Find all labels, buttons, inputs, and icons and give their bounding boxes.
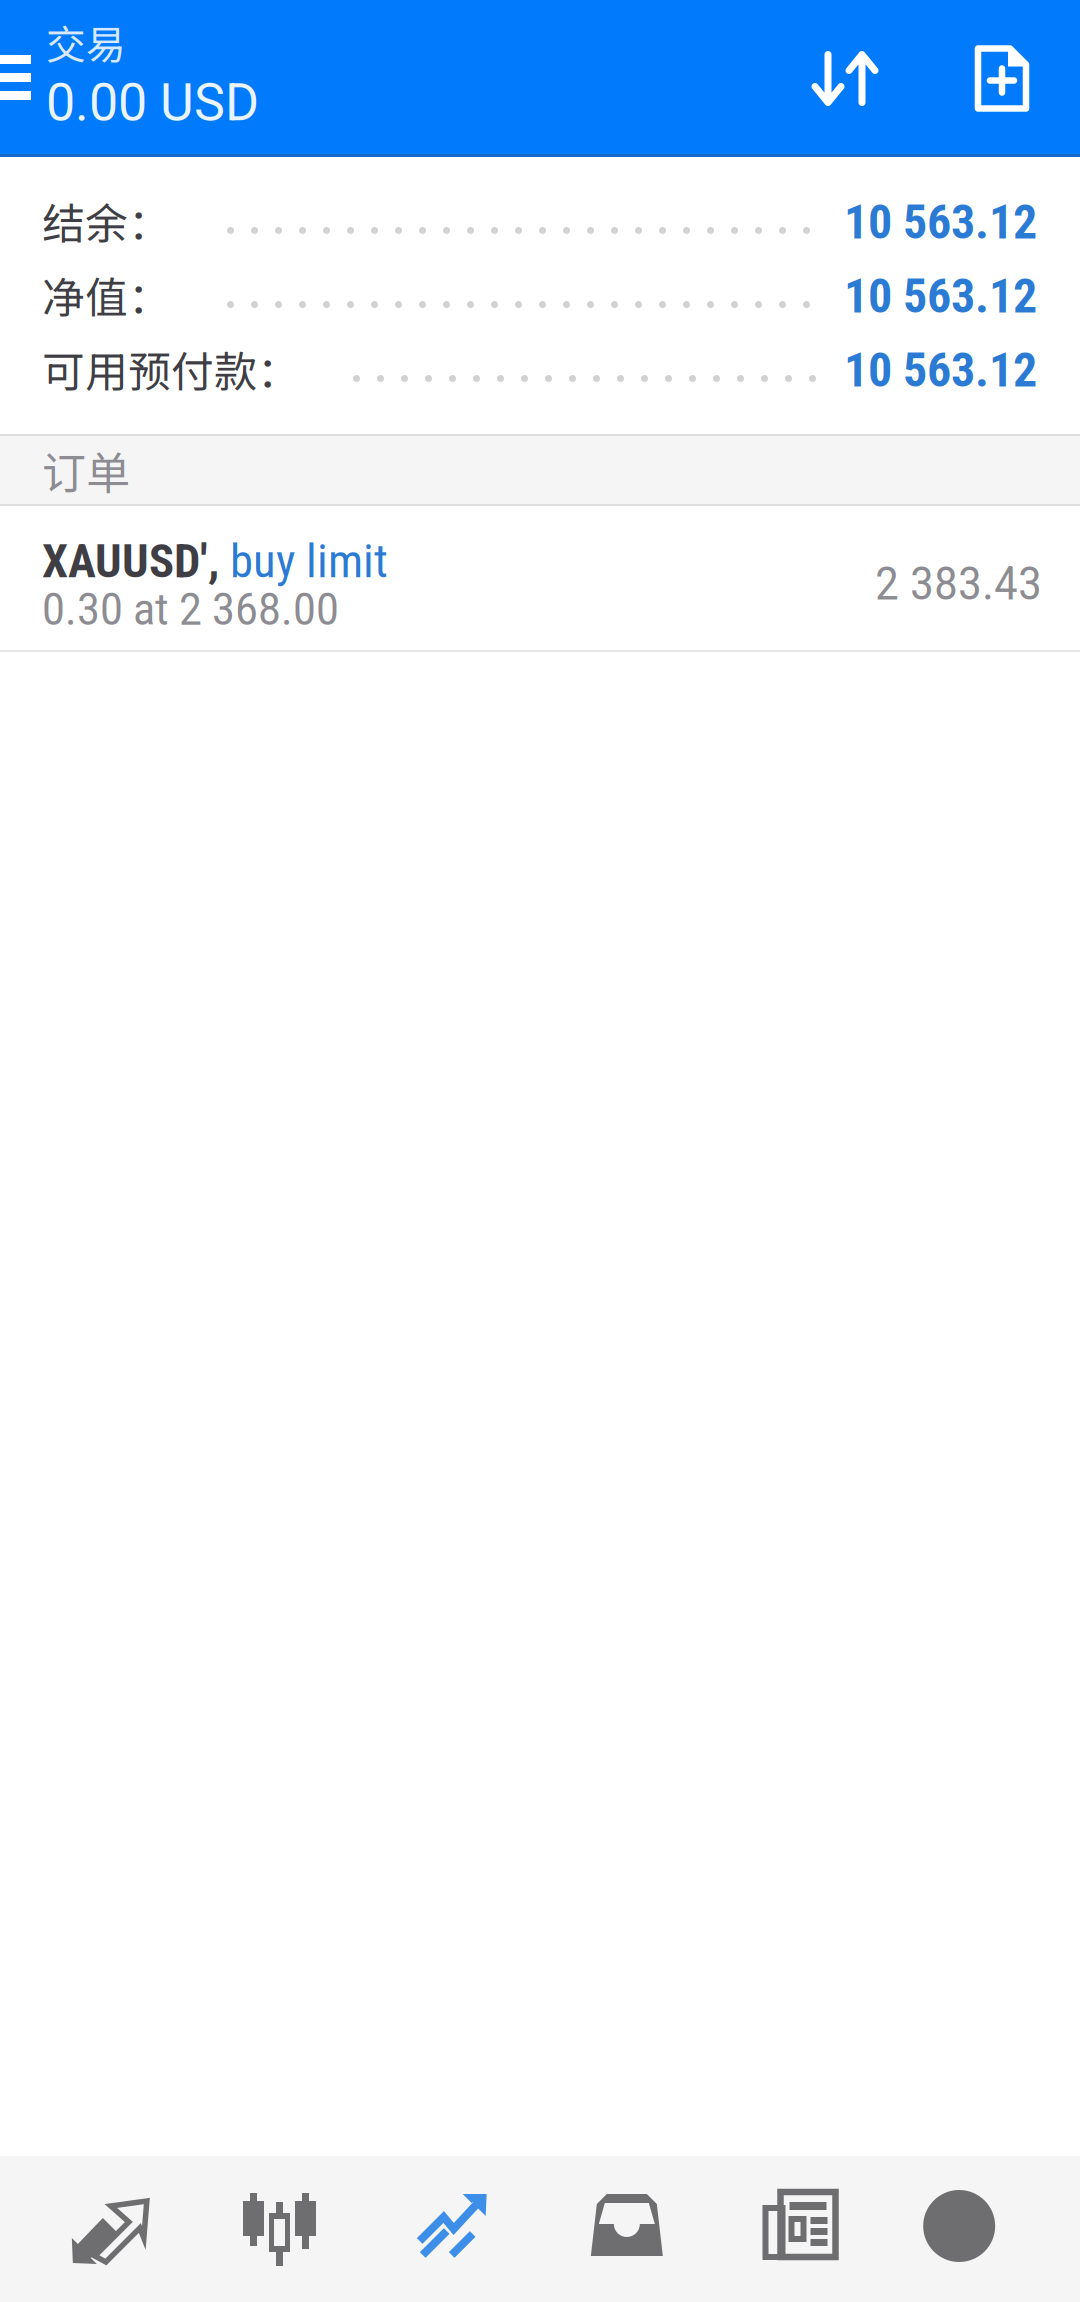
staticText: 订单 bbox=[42, 438, 130, 502]
staticText: 10 563.12 bbox=[844, 342, 1037, 398]
button[interactable]: Menu bbox=[0, 0, 48, 157]
staticText: 净值： bbox=[42, 264, 171, 326]
button[interactable]: News bbox=[704, 2156, 873, 2302]
staticText: 10 563.12 bbox=[844, 194, 1037, 250]
staticText: 交易 bbox=[46, 13, 126, 71]
staticText: XAUUSD', bbox=[42, 534, 219, 589]
button[interactable]: Messages bbox=[534, 2156, 704, 2302]
staticText: 0.30 at 2 368.00 bbox=[42, 584, 339, 636]
staticText: 10 563.12 bbox=[844, 268, 1037, 324]
button[interactable]: Quotes bbox=[25, 2156, 195, 2302]
staticText: 结余： bbox=[42, 190, 171, 252]
button[interactable]: Trade bbox=[364, 2156, 534, 2302]
staticText: buy limit bbox=[219, 534, 388, 589]
staticText: 0.00 USD bbox=[46, 72, 259, 133]
button[interactable]: Charts bbox=[195, 2156, 364, 2302]
button[interactable]: Account bbox=[873, 2156, 1043, 2302]
button[interactable]: XAUUSD', bbox=[0, 506, 1080, 652]
staticText: 2 383.43 bbox=[875, 557, 1042, 610]
button[interactable]: Sort bbox=[777, 0, 913, 157]
staticText: 可用预付款： bbox=[42, 338, 300, 400]
button[interactable]: New order bbox=[934, 0, 1070, 157]
